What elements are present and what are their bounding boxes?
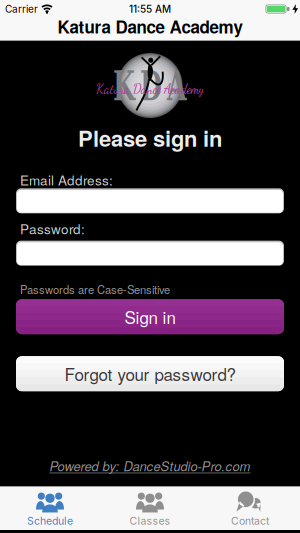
staticText: Katura Dance Academy xyxy=(96,81,204,96)
staticText: Sign in xyxy=(124,304,175,329)
staticText: K xyxy=(113,71,135,101)
staticText: A xyxy=(167,71,187,101)
staticText: Powered by: DanceStudio-Pro.com xyxy=(49,457,250,475)
staticText: Carrier xyxy=(5,3,38,15)
staticText: Forgot your password? xyxy=(64,361,235,386)
staticText: Email Address: xyxy=(20,170,113,189)
staticText: Schedule xyxy=(27,514,73,527)
staticText: 11:55 AM xyxy=(129,3,171,15)
staticText: Please sign in xyxy=(78,122,222,153)
staticText: Contact xyxy=(231,514,269,527)
staticText: D xyxy=(140,71,162,101)
staticText: Passwords are Case-Sensitive xyxy=(20,281,170,297)
staticText: Classes xyxy=(129,514,170,527)
staticText: Password: xyxy=(20,219,85,238)
staticText: Katura Dance Academy xyxy=(57,14,242,39)
